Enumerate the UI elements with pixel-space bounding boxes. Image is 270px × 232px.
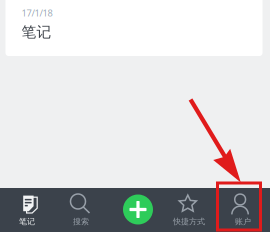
button[interactable]: 搜索	[54, 188, 108, 232]
staticText: 快捷方式	[173, 217, 205, 226]
button[interactable]: 笔记	[0, 188, 54, 232]
staticText: 笔记	[21, 23, 51, 41]
button[interactable]: 快捷方式	[162, 188, 216, 232]
staticText: 搜索	[73, 217, 89, 226]
staticText: 17/1/18	[21, 7, 52, 19]
button[interactable]: New note	[108, 188, 162, 232]
staticText: 账户	[235, 217, 251, 226]
button[interactable]: 账户	[216, 188, 270, 232]
staticText: 笔记	[19, 217, 35, 226]
